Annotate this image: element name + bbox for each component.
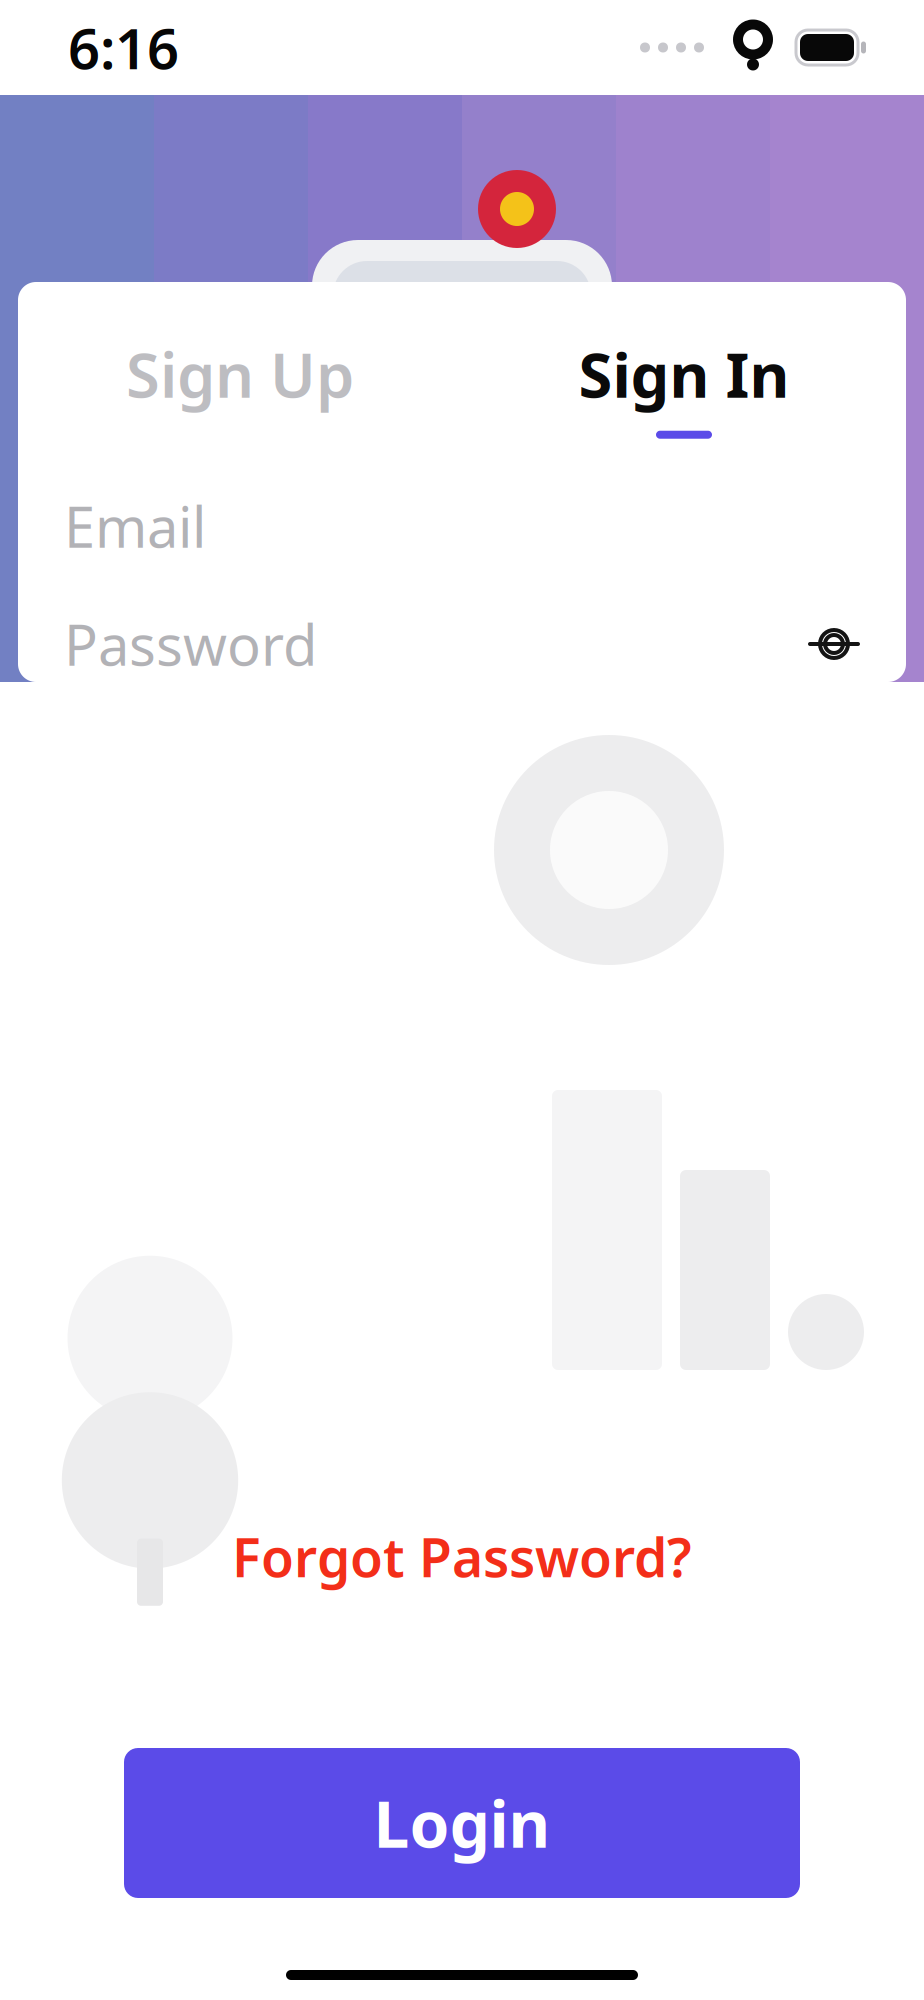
staticText: Forgot Password?: [232, 1521, 692, 1592]
button[interactable]: Email: [18, 478, 906, 574]
staticText: Sign Up: [126, 333, 354, 415]
button[interactable]: Login: [124, 1748, 800, 1898]
button[interactable]: Sign Up: [18, 322, 462, 450]
button[interactable]: Sign In: [462, 322, 906, 450]
staticText: Sign In: [578, 333, 789, 415]
staticText: Password: [64, 607, 317, 681]
button[interactable]: Forgot Password?: [206, 1505, 718, 1608]
staticText: Email: [64, 489, 206, 563]
staticText: Login: [373, 1780, 550, 1865]
button[interactable]: Password: [18, 596, 906, 692]
staticText: 6:16: [68, 10, 179, 85]
